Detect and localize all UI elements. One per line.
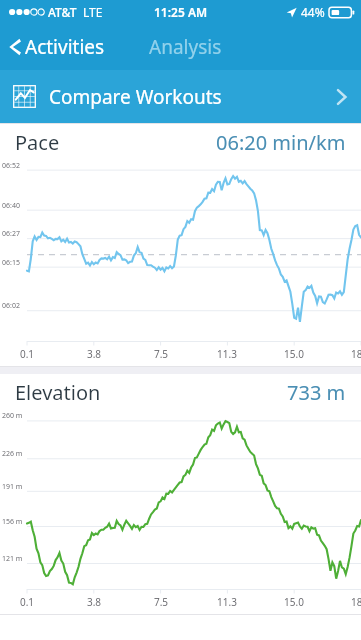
staticText: 260 m	[2, 411, 23, 421]
staticText: 7.5	[147, 595, 175, 609]
staticText: 06:02	[2, 301, 20, 311]
other: Back	[8, 36, 21, 58]
button[interactable]: Analysis	[149, 34, 222, 60]
button[interactable]: Compare Workouts	[0, 70, 361, 123]
staticText: 156 m	[2, 517, 23, 527]
staticText: 0.1	[13, 347, 41, 361]
staticText: Activities	[25, 34, 105, 60]
staticText: 733 m	[287, 379, 346, 406]
staticText: 06:52	[2, 161, 20, 171]
other: Open	[336, 87, 347, 107]
staticText: 3.8	[80, 347, 108, 361]
staticText: 06:15	[2, 258, 20, 268]
button[interactable]: Elevation	[0, 374, 361, 615]
button[interactable]: Back	[0, 28, 115, 66]
staticText: 7.5	[147, 347, 175, 361]
staticText: 226 m	[2, 449, 23, 459]
staticText: AT&T	[48, 4, 77, 20]
staticText: Pace	[15, 129, 60, 156]
staticText: 06:40	[2, 201, 20, 211]
staticText: 15.0	[280, 347, 308, 361]
staticText: 18.8	[347, 595, 361, 609]
staticText: 11.3	[213, 347, 241, 361]
staticText: 121 m	[2, 554, 23, 564]
staticText: 191 m	[2, 482, 23, 492]
staticText: 11.3	[213, 595, 241, 609]
staticText: 15.0	[280, 595, 308, 609]
staticText: 0.1	[13, 595, 41, 609]
staticText: 11:25 AM	[154, 4, 208, 20]
staticText: 18.8	[347, 347, 361, 361]
staticText: 06:20 min/km	[216, 129, 346, 156]
staticText: LTE	[83, 4, 103, 20]
staticText: 06:27	[2, 229, 20, 239]
staticText: 44%	[301, 4, 325, 20]
button[interactable]: Pace	[0, 124, 361, 367]
staticText: Compare Workouts	[49, 84, 222, 110]
staticText: 3.8	[80, 595, 108, 609]
staticText: Elevation	[15, 379, 101, 406]
